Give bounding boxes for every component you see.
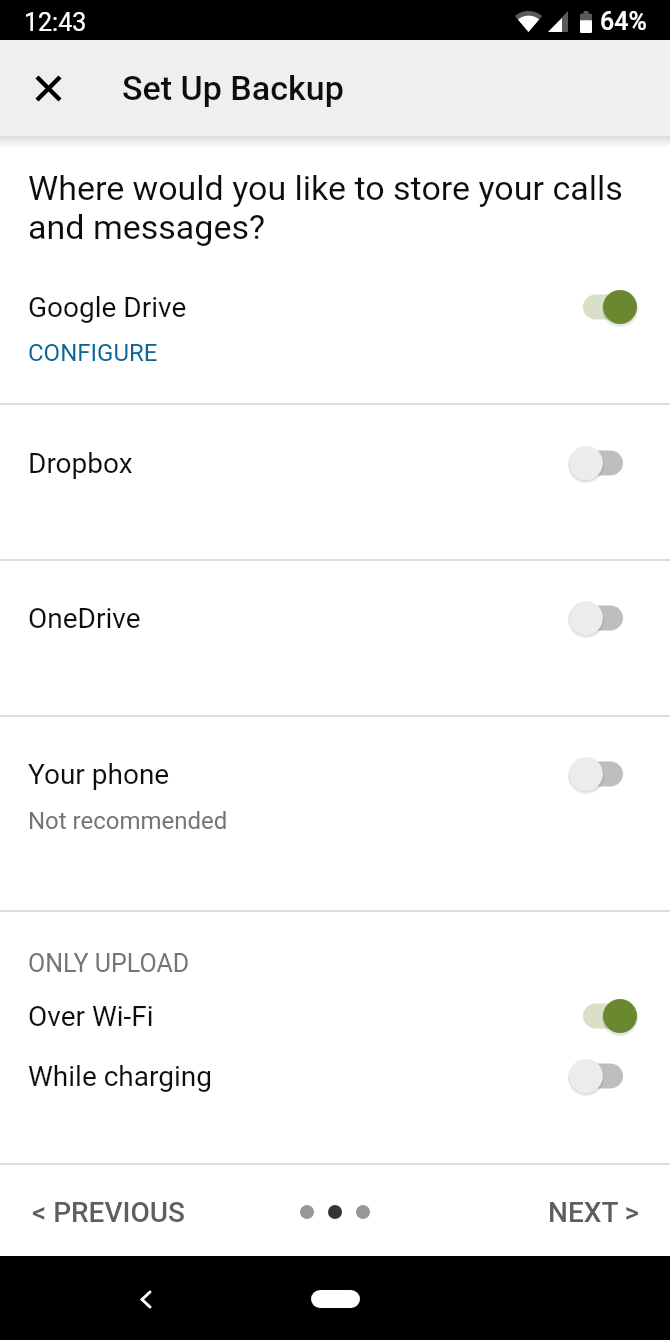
staticText: Google Drive bbox=[28, 291, 187, 324]
button[interactable]: CONFIGURE bbox=[28, 339, 158, 367]
button[interactable]: < PREVIOUS bbox=[0, 1176, 217, 1249]
button[interactable]: On bbox=[569, 999, 637, 1033]
staticText: CONFIGURE bbox=[28, 339, 158, 367]
button[interactable]: Off bbox=[569, 601, 637, 635]
button[interactable]: On bbox=[569, 290, 637, 324]
button[interactable]: Off bbox=[569, 1059, 637, 1093]
staticText: NEXT > bbox=[548, 1196, 640, 1229]
staticText: Over Wi-Fi bbox=[28, 1000, 154, 1033]
staticText: < PREVIOUS bbox=[32, 1196, 185, 1229]
staticText: Not recommended bbox=[28, 807, 228, 835]
staticText: ONLY UPLOAD bbox=[28, 949, 190, 978]
staticText: and messages? bbox=[28, 207, 266, 247]
staticText: Set Up Backup bbox=[122, 68, 344, 108]
staticText: While charging bbox=[28, 1060, 212, 1093]
staticText: Where would you like to store your calls bbox=[28, 168, 623, 208]
staticText: OneDrive bbox=[28, 602, 141, 635]
button[interactable]: Home bbox=[311, 1290, 360, 1308]
button[interactable]: Off bbox=[569, 757, 637, 791]
button[interactable]: Close bbox=[20, 60, 76, 116]
staticText: Your phone bbox=[28, 758, 170, 791]
staticText: Dropbox bbox=[28, 447, 133, 480]
staticText: 64% bbox=[600, 7, 647, 36]
button[interactable]: Off bbox=[569, 446, 637, 480]
button[interactable]: NEXT > bbox=[516, 1176, 670, 1249]
staticText: 12:43 bbox=[24, 8, 87, 37]
button[interactable]: Back bbox=[122, 1275, 170, 1323]
